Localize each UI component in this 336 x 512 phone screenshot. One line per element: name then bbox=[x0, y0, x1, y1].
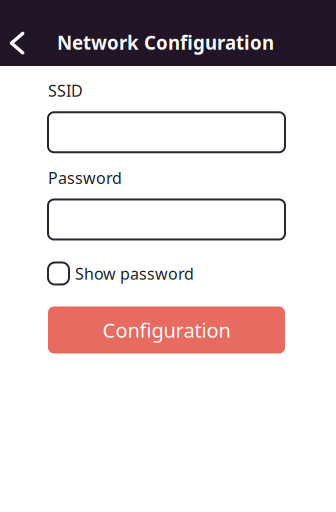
staticText: SSID bbox=[48, 80, 83, 101]
button[interactable]: Show password bbox=[48, 262, 285, 284]
staticText: Configuration bbox=[102, 317, 230, 343]
button[interactable]: Back bbox=[0, 28, 34, 58]
button[interactable]: Configuration bbox=[48, 306, 285, 353]
button[interactable]: SSID bbox=[48, 112, 285, 152]
staticText: Password bbox=[48, 167, 122, 188]
button[interactable]: Password bbox=[48, 199, 285, 239]
staticText: Show password bbox=[75, 263, 194, 284]
staticText: Network Configuration bbox=[57, 30, 274, 55]
